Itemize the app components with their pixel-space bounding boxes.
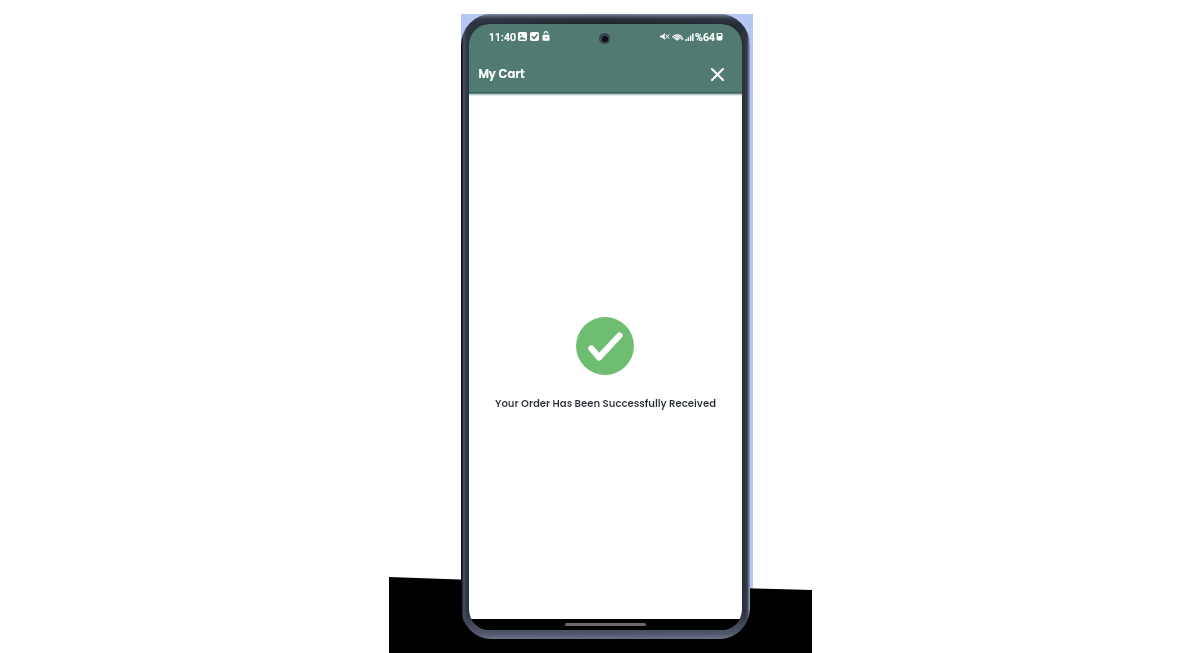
staticText: My Cart bbox=[478, 66, 525, 82]
staticText: %64 bbox=[695, 31, 715, 43]
button[interactable]: My Cart bbox=[478, 66, 525, 82]
staticText: Your Order Has Been Successfully Receive… bbox=[495, 396, 716, 410]
button[interactable]: Close bbox=[705, 62, 729, 86]
staticText: 11:40 bbox=[489, 31, 516, 43]
